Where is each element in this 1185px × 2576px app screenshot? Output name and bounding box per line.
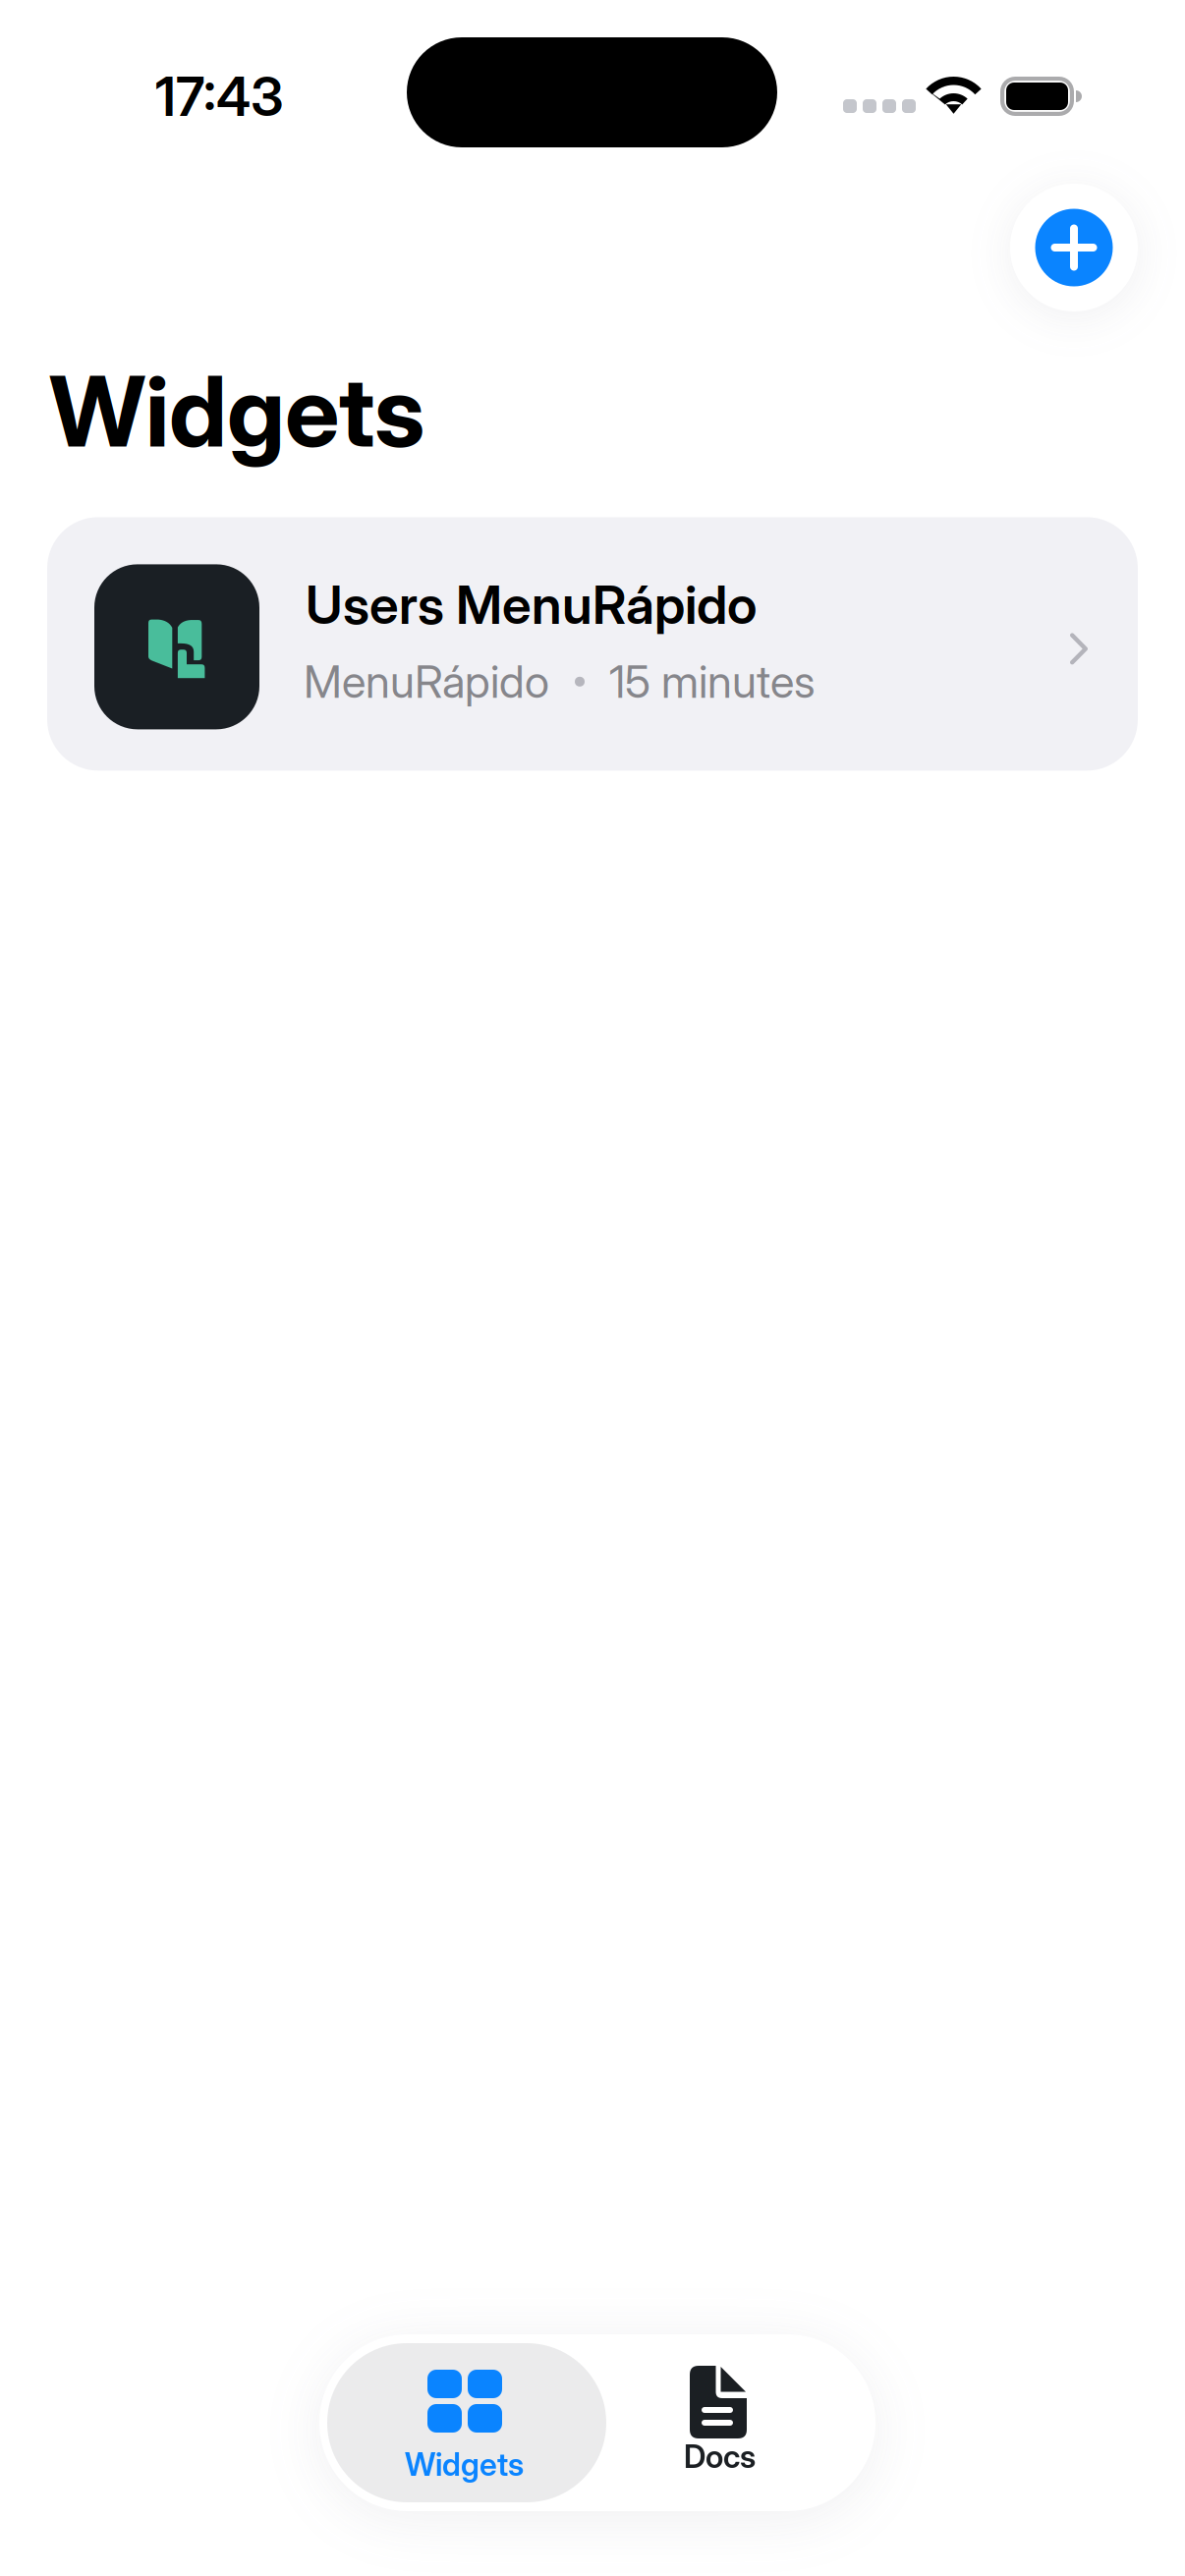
- staticText: Widgets: [405, 2445, 524, 2483]
- button[interactable]: Widgets: [327, 2343, 606, 2502]
- staticText: 15 minutes: [609, 655, 816, 709]
- staticText: 17:43: [155, 64, 284, 129]
- button[interactable]: Docs: [621, 2334, 867, 2511]
- button[interactable]: Add widget: [1010, 184, 1138, 311]
- staticText: MenuRápido: [304, 655, 549, 709]
- staticText: Docs: [684, 2437, 756, 2475]
- button[interactable]: Users MenuRápido: [47, 517, 1138, 771]
- staticText: Widgets: [49, 353, 424, 470]
- staticText: Users MenuRápido: [306, 573, 757, 637]
